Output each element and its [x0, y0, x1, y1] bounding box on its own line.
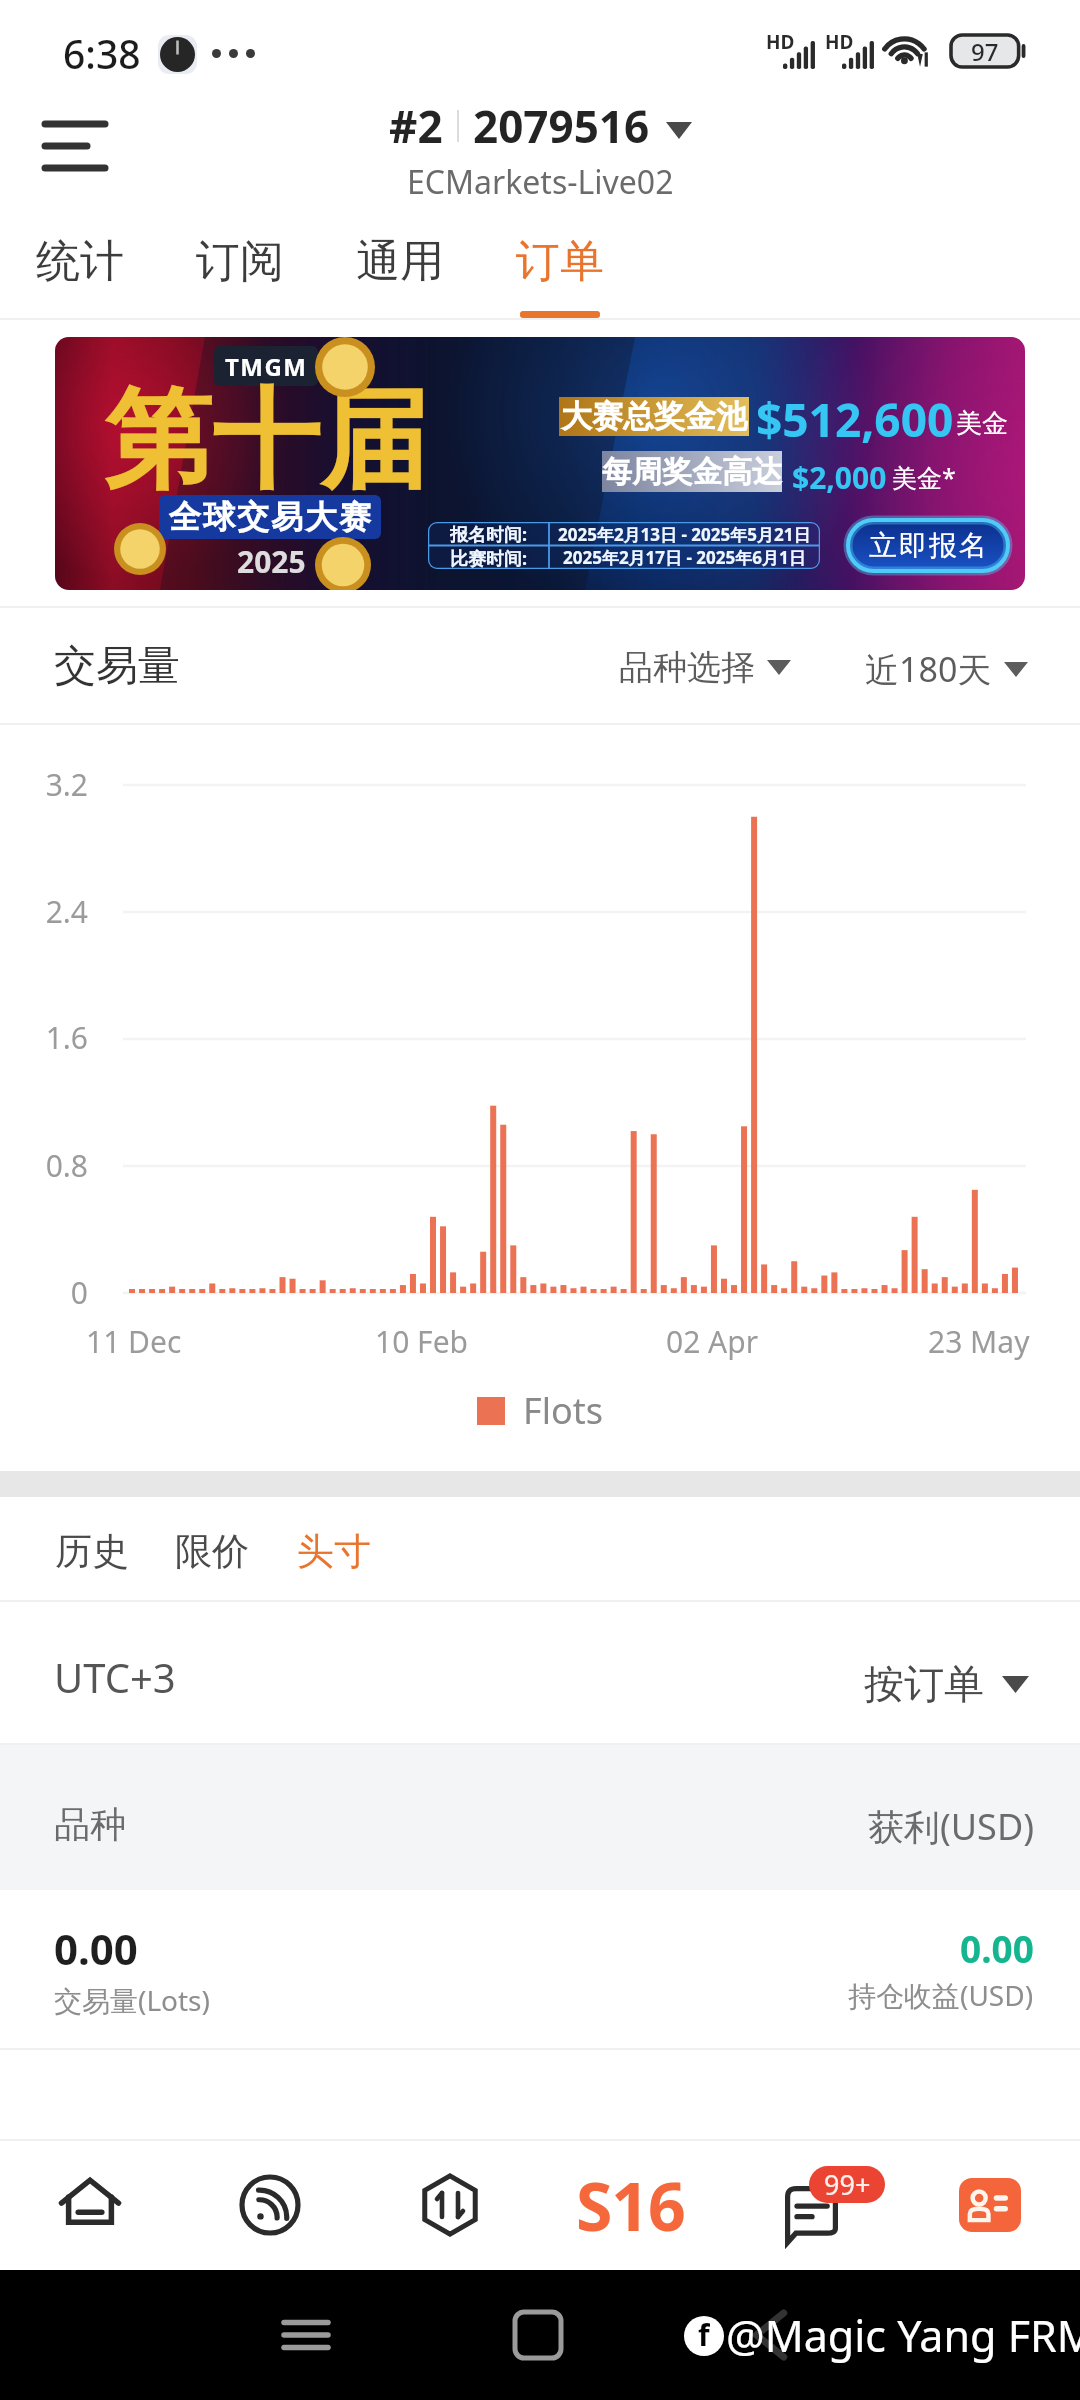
- staticText: 品种: [54, 1802, 126, 1847]
- staticText: @Magic Yang FRM: [726, 2306, 1080, 2365]
- staticText: 97: [971, 35, 999, 68]
- staticText: 02 Apr: [666, 1321, 759, 1362]
- staticText: S16: [576, 2160, 685, 2250]
- staticText: 全球交易大赛: [168, 497, 372, 537]
- staticText: 第十届: [104, 373, 428, 509]
- staticText: 每周奖金高达: [602, 453, 782, 491]
- staticText: HD: [825, 29, 854, 55]
- staticText: 0.00: [960, 1923, 1034, 1973]
- button[interactable]: 订单: [480, 212, 640, 318]
- button[interactable]: 0.00: [0, 1890, 1080, 2050]
- staticText: 限价: [175, 1528, 249, 1575]
- staticText: UTC+3: [54, 1650, 176, 1704]
- staticText: $512,600: [756, 388, 954, 451]
- staticText: 立即报名: [868, 528, 988, 563]
- staticText: 10 Feb: [375, 1321, 469, 1362]
- button[interactable]: Recents: [271, 2300, 341, 2370]
- staticText: TMGM: [225, 350, 308, 383]
- staticText: 99+: [824, 2166, 871, 2203]
- button[interactable]: Home: [503, 2300, 573, 2370]
- staticText: 1.6: [0, 1017, 88, 1058]
- staticText: #2: [389, 96, 443, 156]
- button[interactable]: 品种选择: [615, 642, 795, 693]
- button[interactable]: Home: [0, 2141, 180, 2269]
- staticText: 通用: [356, 234, 444, 289]
- button[interactable]: S16: [540, 2141, 720, 2269]
- staticText: 美金: [956, 407, 1008, 440]
- staticText: 近180天: [865, 646, 992, 692]
- staticText: 23 May: [928, 1321, 1030, 1362]
- button[interactable]: 统计: [0, 212, 160, 318]
- staticText: 0.8: [0, 1145, 88, 1186]
- button[interactable]: Profile: [900, 2141, 1080, 2269]
- staticText: ECMarkets-Live02: [407, 160, 674, 204]
- staticText: 11 Dec: [86, 1321, 182, 1362]
- button[interactable]: 通用: [320, 212, 480, 318]
- staticText: 比赛时间:: [450, 546, 528, 569]
- staticText: 美金*: [892, 460, 956, 494]
- button[interactable]: 立即报名: [848, 520, 1008, 571]
- staticText: 头寸: [297, 1528, 371, 1575]
- staticText: f: [698, 2316, 710, 2354]
- button[interactable]: 限价: [163, 1518, 261, 1585]
- button[interactable]: 历史: [43, 1518, 141, 1585]
- staticText: $2,000: [792, 457, 887, 498]
- staticText: 大赛总奖金池: [561, 397, 747, 436]
- staticText: 0.00: [54, 1920, 138, 1977]
- staticText: 交易量(Lots): [54, 1981, 210, 2019]
- button[interactable]: TMGM: [55, 337, 1025, 590]
- staticText: 订阅: [196, 234, 284, 289]
- staticText: 历史: [55, 1528, 129, 1575]
- staticText: 统计: [36, 234, 124, 289]
- staticText: 2025年2月17日 - 2025年6月1日: [563, 546, 806, 569]
- staticText: 2025年2月13日 - 2025年5月21日: [558, 523, 811, 546]
- staticText: HD: [766, 29, 795, 55]
- button[interactable]: 订阅: [160, 212, 320, 318]
- staticText: 3.2: [0, 764, 88, 805]
- staticText: 获利(USD): [868, 1802, 1034, 1851]
- button[interactable]: 按订单: [858, 1653, 1035, 1715]
- staticText: 按订单: [864, 1659, 984, 1709]
- staticText: 6:38: [63, 27, 141, 80]
- button[interactable]: Trade: [360, 2141, 540, 2269]
- staticText: Flots: [523, 1386, 603, 1435]
- staticText: 报名时间:: [450, 522, 528, 546]
- staticText: 2.4: [0, 891, 88, 932]
- button[interactable]: Messages: [720, 2141, 900, 2269]
- staticText: 订单: [516, 234, 604, 289]
- button[interactable]: Signals: [180, 2141, 360, 2269]
- staticText: 2079516: [473, 96, 650, 156]
- staticText: 品种选择: [619, 646, 755, 689]
- staticText: 0: [0, 1272, 88, 1313]
- button[interactable]: 头寸: [285, 1518, 383, 1585]
- button[interactable]: Menu: [25, 104, 121, 188]
- staticText: 2025: [237, 541, 306, 582]
- staticText: 持仓收益(USD): [848, 1976, 1034, 2014]
- button[interactable]: 近180天: [861, 642, 1032, 696]
- staticText: 交易量: [54, 640, 180, 693]
